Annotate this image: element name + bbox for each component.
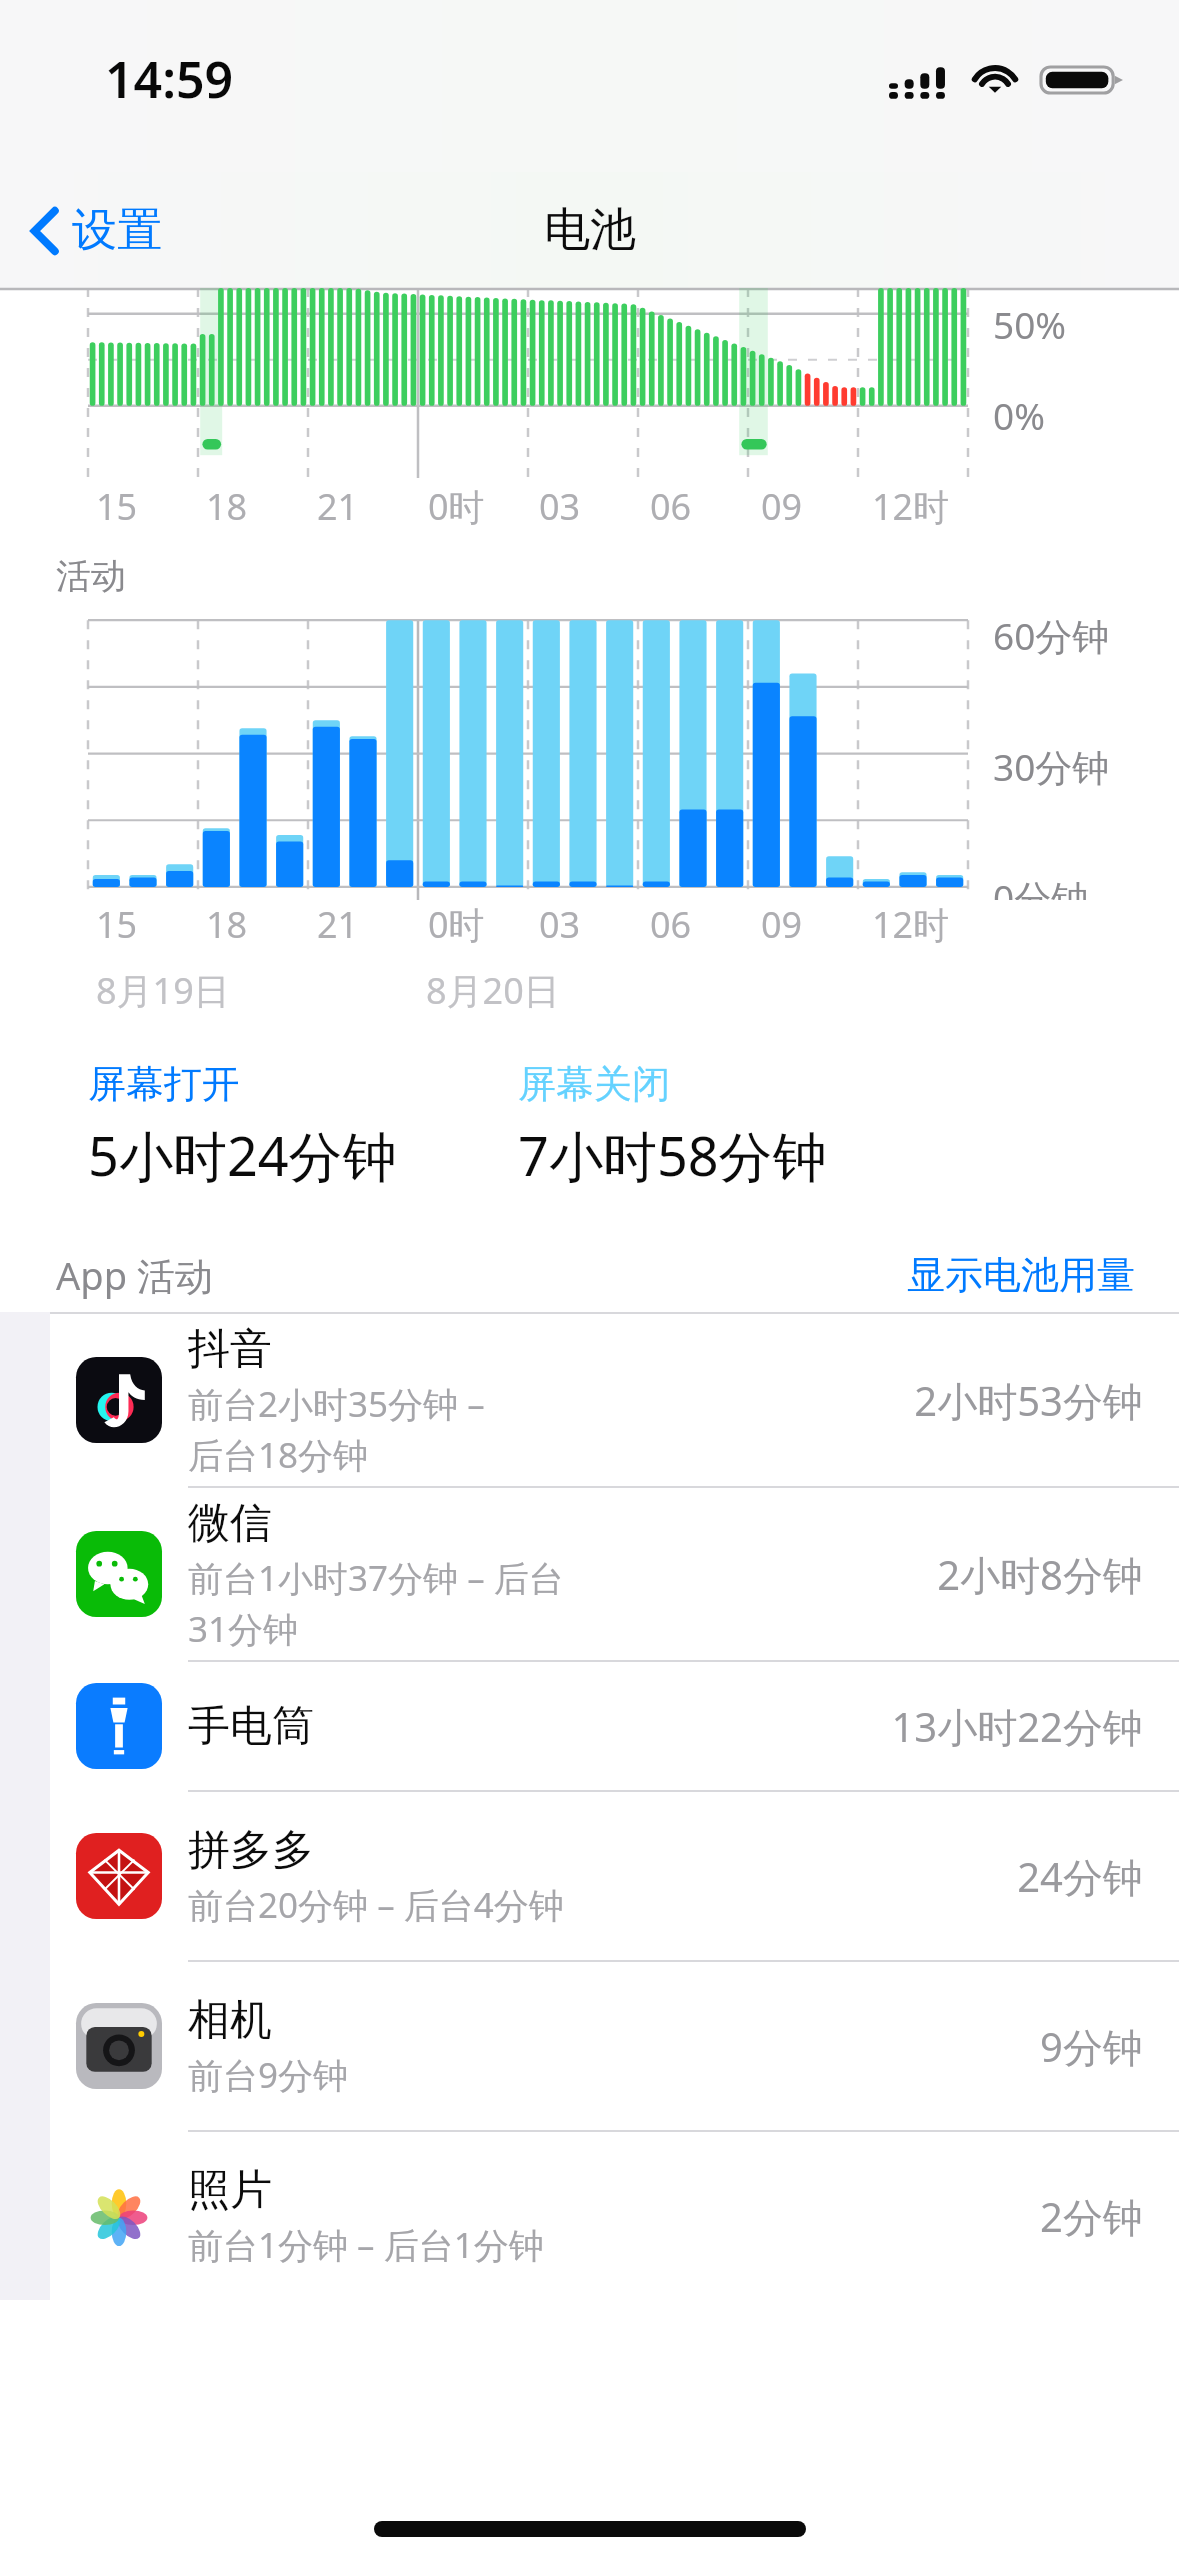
staticText: 前台2小时35分钟 – 后台18分钟 — [188, 1380, 485, 1478]
staticText: 电池 — [544, 201, 636, 259]
staticText: 0时 — [428, 482, 485, 530]
staticText: 手电筒 — [188, 1700, 314, 1753]
staticText: 60分钟 — [993, 610, 1110, 661]
staticText: 21 — [317, 482, 359, 530]
button[interactable]: 抖音 — [50, 1314, 1179, 1486]
staticText: App 活动 — [56, 1249, 213, 1301]
button[interactable]: 微信 — [50, 1488, 1179, 1660]
staticText: 09 — [761, 900, 803, 949]
staticText: 21 — [317, 900, 359, 949]
staticText: 0分钟 — [993, 872, 1089, 900]
staticText: 50% — [993, 299, 1067, 349]
staticText: 06 — [650, 482, 692, 530]
staticText: 12时 — [872, 482, 950, 530]
staticText: 抖音 — [188, 1323, 272, 1376]
staticText: 2分钟 — [1040, 2189, 1143, 2244]
staticText: 2小时53分钟 — [914, 1373, 1143, 1428]
button[interactable]: 手电筒 — [50, 1662, 1179, 1790]
staticText: 8月20日 — [426, 966, 560, 1015]
staticText: 相机 — [188, 1994, 272, 2047]
staticText: 12时 — [872, 900, 950, 949]
button[interactable]: 设置 — [22, 194, 172, 267]
staticText: 照片 — [188, 2164, 272, 2217]
staticText: 0时 — [428, 900, 485, 949]
staticText: 24分钟 — [1017, 1849, 1143, 1904]
staticText: 14:59 — [105, 45, 234, 113]
staticText: 设置 — [72, 202, 162, 259]
staticText: 06 — [650, 900, 692, 949]
staticText: 微信 — [188, 1497, 272, 1550]
staticText: 0% — [993, 390, 1045, 440]
staticText: 前台1分钟 – 后台1分钟 — [188, 2221, 544, 2269]
button[interactable]: 照片 — [50, 2132, 1179, 2300]
staticText: 15 — [96, 482, 138, 530]
staticText: 屏幕打开 — [88, 1060, 240, 1108]
staticText: 15 — [96, 900, 138, 949]
button[interactable]: 相机 — [50, 1962, 1179, 2130]
staticText: 拼多多 — [188, 1824, 314, 1877]
staticText: 03 — [539, 900, 581, 949]
staticText: 9分钟 — [1040, 2019, 1143, 2074]
button[interactable]: 拼多多 — [50, 1792, 1179, 1960]
staticText: 显示电池用量 — [907, 1251, 1135, 1299]
staticText: 2小时8分钟 — [937, 1547, 1143, 1602]
staticText: 活动 — [56, 554, 126, 598]
staticText: 屏幕关闭 — [518, 1060, 670, 1108]
staticText: 18 — [206, 900, 248, 949]
staticText: 18 — [206, 482, 248, 530]
staticText: 8月19日 — [96, 966, 230, 1015]
staticText: 前台9分钟 — [188, 2051, 349, 2099]
button[interactable]: 显示电池用量 — [907, 1251, 1179, 1299]
staticText: 前台1小时37分钟 – 后台 31分钟 — [188, 1554, 564, 1652]
staticText: 09 — [761, 482, 803, 530]
staticText: 30分钟 — [993, 741, 1110, 792]
staticText: 前台20分钟 – 后台4分钟 — [188, 1881, 564, 1929]
staticText: 03 — [539, 482, 581, 530]
staticText: 7小时58分钟 — [518, 1118, 827, 1192]
staticText: 13小时22分钟 — [891, 1699, 1143, 1754]
staticText: 5小时24分钟 — [88, 1118, 397, 1192]
